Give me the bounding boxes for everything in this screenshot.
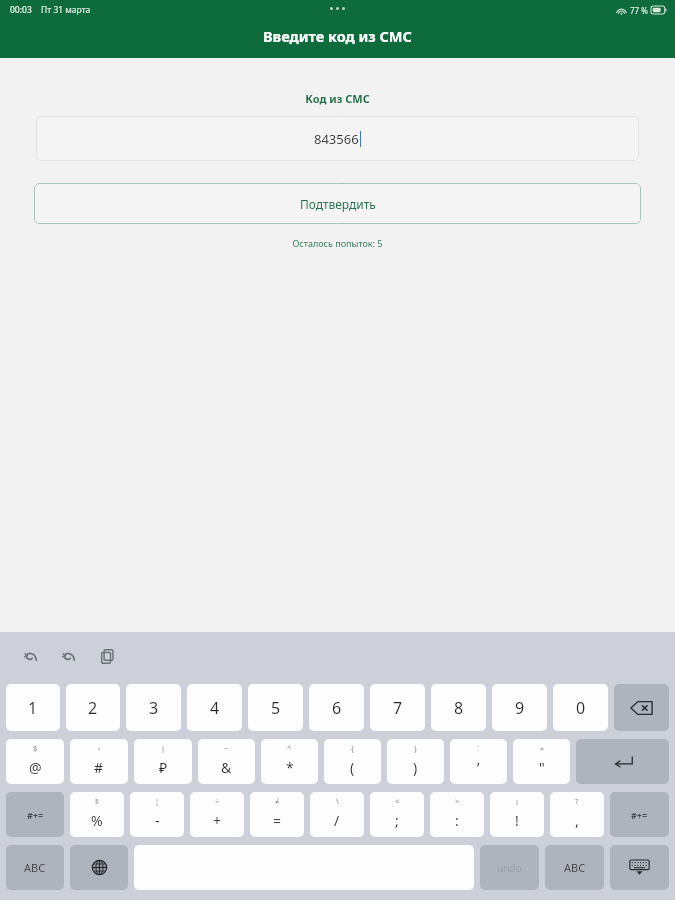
staticText: Введите код из СМС	[263, 26, 412, 46]
staticText: -	[155, 811, 160, 830]
staticText: undo	[497, 861, 522, 875]
staticText: +	[213, 811, 222, 830]
button[interactable]: Paste	[94, 643, 120, 669]
staticText: ÷	[215, 796, 220, 806]
button[interactable]: <	[370, 792, 424, 837]
staticText: 7	[393, 697, 403, 719]
button[interactable]: 9	[492, 684, 547, 731]
staticText: }	[414, 743, 417, 753]
staticText: Подтвердить	[300, 196, 376, 212]
staticText: »	[540, 743, 544, 753]
button[interactable]: }	[387, 739, 444, 784]
button[interactable]: ¦	[130, 792, 184, 837]
button[interactable]: ~	[198, 739, 255, 784]
button[interactable]: Redo	[56, 643, 82, 669]
staticText: ¡	[516, 796, 519, 806]
staticText: 0	[576, 697, 586, 719]
button[interactable]: 8	[431, 684, 486, 731]
staticText: Код из СМС	[0, 91, 675, 106]
button[interactable]: 2	[66, 684, 120, 731]
staticText: )	[413, 758, 418, 777]
staticText: *	[286, 758, 294, 777]
staticText: 6	[332, 697, 342, 719]
staticText: 3	[149, 697, 159, 719]
staticText: ¦	[155, 796, 160, 806]
staticText: $	[33, 743, 38, 753]
staticText: <	[395, 796, 400, 806]
button[interactable]: Change keyboard language	[70, 845, 128, 890]
button[interactable]: ret	[576, 739, 669, 784]
staticText: ?	[575, 796, 579, 806]
staticText: \	[336, 796, 339, 806]
staticText: ~	[224, 743, 229, 753]
button[interactable]: §	[70, 792, 124, 837]
staticText: "	[539, 758, 545, 777]
staticText: >	[455, 796, 460, 806]
button[interactable]: ABC	[6, 845, 64, 890]
button[interactable]: >	[430, 792, 484, 837]
staticText: ^	[287, 743, 292, 753]
button[interactable]: ABC	[545, 845, 604, 890]
button[interactable]: 1	[6, 684, 60, 731]
staticText: |	[161, 743, 166, 753]
staticText: ≠	[275, 796, 280, 806]
staticText: ABC	[564, 860, 586, 875]
staticText: 5	[271, 697, 281, 719]
button[interactable]: ^	[261, 739, 318, 784]
staticText: 2	[88, 697, 98, 719]
staticText: #+=	[27, 809, 44, 821]
staticText: =	[273, 811, 282, 830]
button[interactable]: ?	[550, 792, 604, 837]
staticText: ₽	[159, 758, 168, 777]
button[interactable]: 0	[553, 684, 608, 731]
staticText: &	[221, 758, 232, 777]
button[interactable]: `	[450, 739, 507, 784]
button[interactable]: 7	[370, 684, 425, 731]
button[interactable]: 5	[248, 684, 303, 731]
staticText: %	[91, 811, 103, 830]
button[interactable]: ¡	[490, 792, 544, 837]
staticText: Осталось попыток: 5	[0, 237, 675, 249]
button[interactable]: ÷	[190, 792, 244, 837]
staticText: #	[94, 758, 104, 777]
button[interactable]: 843566	[36, 116, 639, 161]
staticText: §	[95, 796, 99, 806]
button[interactable]: 3	[126, 684, 181, 731]
staticText: 9	[515, 697, 525, 719]
staticText: 8	[454, 697, 464, 719]
staticText: 1	[28, 697, 38, 719]
staticText: ,	[575, 811, 579, 830]
button[interactable]: {	[324, 739, 381, 784]
staticText: ’	[477, 758, 480, 777]
button[interactable]: Подтвердить	[34, 183, 641, 224]
staticText: :	[455, 811, 459, 830]
staticText: @	[29, 758, 42, 777]
button[interactable]: 4	[187, 684, 242, 731]
staticText: ;	[395, 811, 399, 830]
button[interactable]: del	[614, 684, 669, 731]
staticText: 843566	[314, 130, 359, 148]
button[interactable]: Undo	[18, 643, 44, 669]
staticText: 4	[210, 697, 220, 719]
button[interactable]: $	[6, 739, 64, 784]
button[interactable]: #+=	[610, 792, 669, 837]
staticText: !	[515, 811, 519, 830]
staticText: {	[351, 743, 354, 753]
staticText: /	[334, 811, 340, 830]
button[interactable]: #+=	[6, 792, 64, 837]
button[interactable]: Hide keyboard	[610, 845, 669, 890]
button[interactable]: 6	[309, 684, 364, 731]
staticText: #+=	[631, 809, 648, 821]
staticText: 77 %	[630, 5, 648, 16]
staticText: 00:03	[10, 4, 32, 16]
button[interactable]: undo	[480, 845, 539, 890]
staticText: Пт 31 марта	[41, 4, 91, 16]
button[interactable]: |	[134, 739, 192, 784]
button[interactable]: ≠	[250, 792, 304, 837]
staticText: `	[477, 743, 480, 753]
staticText: ABC	[24, 860, 46, 875]
button[interactable]: ‹	[70, 739, 128, 784]
button[interactable]: \	[310, 792, 364, 837]
button[interactable]: »	[513, 739, 570, 784]
